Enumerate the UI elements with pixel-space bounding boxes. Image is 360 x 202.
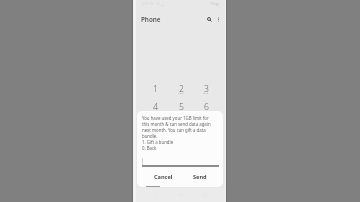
staticText: 6 [204,101,209,113]
button[interactable]: Send [180,172,219,182]
staticText: Send [193,173,207,181]
staticText: MTN NG 4G ▂ [142,2,164,6]
button[interactable]: 4 [148,101,162,114]
staticText: Cancel [154,173,173,181]
button[interactable]: 5 [174,101,188,114]
button[interactable]: 3 [199,83,213,96]
staticText: 1 [153,83,158,95]
staticText: ABC [178,93,184,94]
staticText: bundle. [142,133,158,139]
staticText: 1. Gift a bundle [142,139,174,145]
staticText: 98%▆ [210,2,219,6]
staticText: this month & can send data again [142,121,211,127]
button[interactable]: 6 [199,101,213,114]
staticText: 0. Back [142,145,157,151]
staticText: next month. You can gift a data [142,127,206,133]
button[interactable]: Cancel [144,172,182,182]
staticText: Phone [141,15,161,24]
button[interactable]: Search [205,15,214,24]
staticText: 3 [204,83,209,95]
button[interactable]: 2 [174,83,188,96]
staticText: You have used your 1GB limit for [142,115,209,121]
staticText: 4 [153,101,158,113]
staticText: 2 [179,83,184,95]
button[interactable]: More options [214,15,222,23]
staticText: DEF [203,93,209,94]
staticText: 5 [179,101,184,113]
button[interactable]: 1 [148,83,162,96]
